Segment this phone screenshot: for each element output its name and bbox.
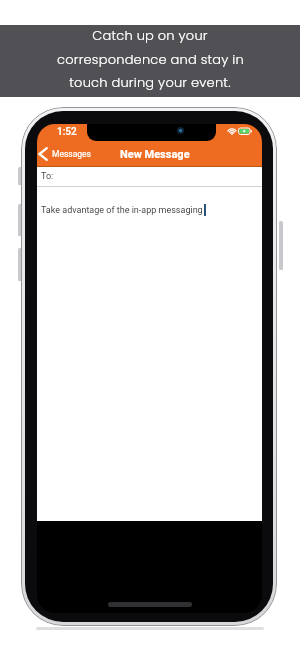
staticText: Catch up on your: [92, 26, 208, 44]
staticText: correspondence and stay in: [57, 50, 244, 68]
staticText: To:: [41, 171, 54, 182]
staticText: Take advantage of the in-app messaging: [41, 205, 203, 216]
staticText: 1:52: [57, 126, 77, 138]
staticText: Messages: [52, 149, 91, 159]
staticText: touch during your event.: [69, 73, 231, 91]
staticText: New Message: [120, 148, 190, 161]
